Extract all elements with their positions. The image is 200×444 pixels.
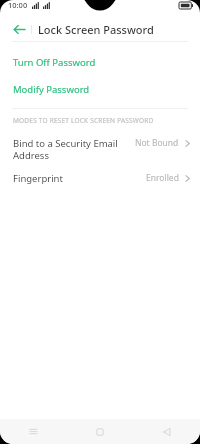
staticText: Enrolled <box>146 172 179 184</box>
button[interactable]: Back <box>9 19 29 39</box>
staticText: Not Bound <box>135 137 179 149</box>
staticText: Turn Off Password <box>13 56 96 69</box>
staticText: Modify Password <box>13 83 90 96</box>
button[interactable]: Fingerprint <box>0 165 200 191</box>
button[interactable]: Bind to a Security Email Address <box>0 131 200 165</box>
button[interactable]: Back <box>133 419 200 444</box>
staticText: Bind to a Security Email Address <box>13 137 118 162</box>
button[interactable]: Recents <box>0 419 66 444</box>
button[interactable]: Modify Password <box>0 76 200 103</box>
staticText: Lock Screen Password <box>38 22 154 37</box>
button[interactable]: Turn Off Password <box>0 49 200 76</box>
staticText: Fingerprint <box>13 172 63 185</box>
staticText: 10:00 <box>8 0 28 10</box>
staticText: MODES TO RESET LOCK SCREEN PASSWORD <box>13 116 154 125</box>
